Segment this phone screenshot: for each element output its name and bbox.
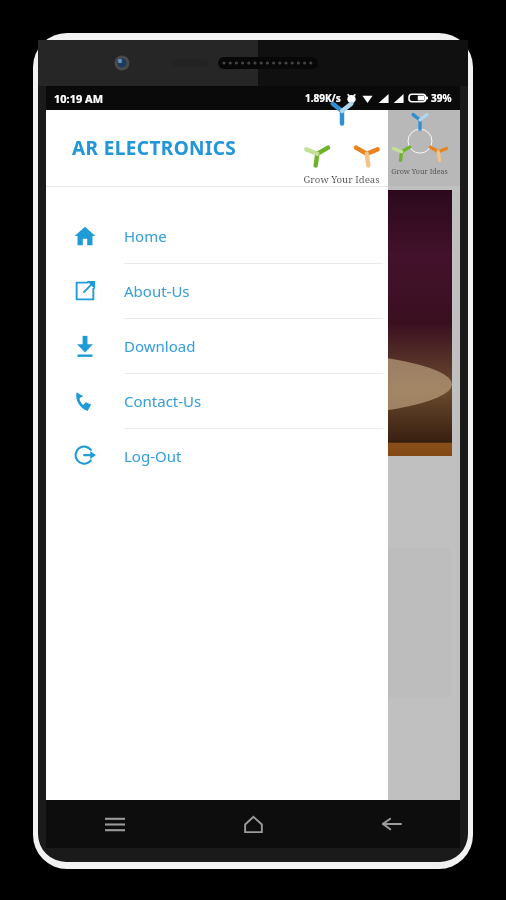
button[interactable]: Home [184,800,322,848]
staticText: Home [124,226,167,246]
staticText: Log-Out [124,446,182,466]
staticText: 1.89K/s [305,91,341,105]
button[interactable]: Log-Out [46,429,388,483]
staticText: About-Us [124,281,190,301]
staticText: Contact-Us [124,391,202,411]
button[interactable]: About-Us [46,264,388,319]
staticText: 39% [431,91,452,105]
staticText: AR ELECTRONICS [72,135,237,161]
staticText: Download [124,336,196,356]
button[interactable]: Recent apps [46,800,184,848]
staticText: Grow Your Ideas [391,166,448,176]
staticText: Grow Your Ideas [303,173,380,186]
button[interactable]: Home [46,209,388,264]
button[interactable]: Back [322,800,460,848]
button[interactable]: Download [46,319,388,374]
button[interactable]: Contact-Us [46,374,388,429]
staticText: 10:19 AM [54,91,104,106]
